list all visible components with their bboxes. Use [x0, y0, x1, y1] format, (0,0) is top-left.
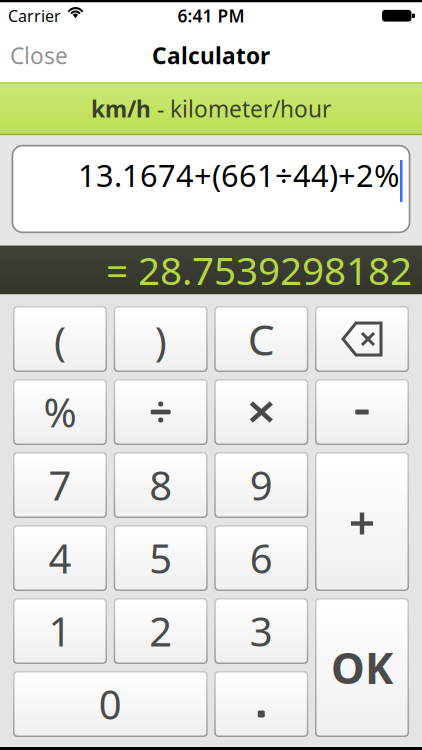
staticText: 13.1674+(661÷44)+2%	[78, 155, 399, 195]
button[interactable]: Multiply	[214, 379, 308, 445]
staticText: = 28.7539298182	[106, 244, 412, 296]
staticText: km/h	[91, 94, 151, 124]
button[interactable]: Divide	[114, 379, 208, 445]
staticText: 1	[48, 604, 71, 657]
button[interactable]: Plus	[315, 452, 409, 591]
button[interactable]: 6	[214, 525, 308, 591]
button[interactable]: (	[13, 306, 107, 372]
button[interactable]: C	[214, 306, 308, 372]
button[interactable]: OK	[315, 598, 409, 737]
staticText: OK	[331, 639, 393, 696]
staticText: )	[155, 314, 167, 367]
staticText: Carrier	[8, 5, 61, 26]
staticText: 7	[48, 458, 71, 511]
button[interactable]: 8	[114, 452, 208, 518]
staticText: C	[248, 311, 275, 367]
staticText: 9	[250, 458, 273, 511]
staticText: 4	[48, 531, 71, 584]
staticText: Close	[10, 40, 68, 70]
staticText: Calculator	[152, 40, 270, 70]
staticText: 2	[149, 604, 172, 657]
staticText: 3	[250, 604, 273, 657]
staticText: 8	[149, 458, 172, 511]
staticText: (	[54, 314, 66, 367]
staticText: - kilometer/hour	[151, 94, 331, 124]
button[interactable]: %	[13, 379, 107, 445]
button[interactable]: 7	[13, 452, 107, 518]
button[interactable]: 9	[214, 452, 308, 518]
button[interactable]: 2	[114, 598, 208, 664]
staticText: %	[43, 385, 76, 438]
button[interactable]: km/h	[0, 82, 422, 135]
staticText: 0	[99, 677, 122, 730]
staticText: 5	[149, 531, 172, 584]
button[interactable]: 1	[13, 598, 107, 664]
button[interactable]: Minus	[315, 379, 409, 445]
button[interactable]: Delete	[315, 306, 409, 372]
button[interactable]: 0	[13, 671, 208, 737]
button[interactable]: Decimal point	[214, 671, 308, 737]
button[interactable]: Close	[10, 40, 68, 70]
button[interactable]: 5	[114, 525, 208, 591]
button[interactable]: )	[114, 306, 208, 372]
staticText: 6:41 PM	[177, 4, 244, 27]
staticText: 6	[250, 531, 273, 584]
button[interactable]: 3	[214, 598, 308, 664]
button[interactable]: 4	[13, 525, 107, 591]
